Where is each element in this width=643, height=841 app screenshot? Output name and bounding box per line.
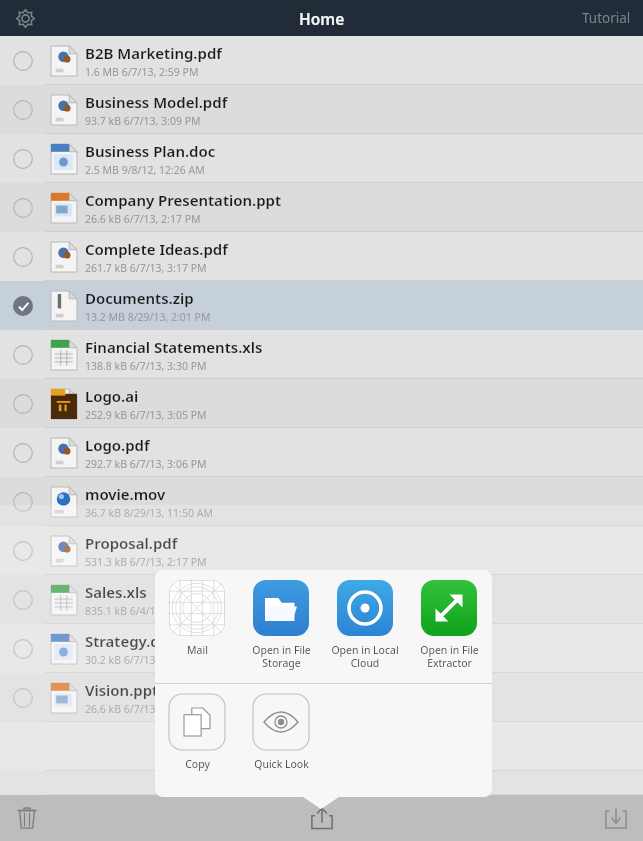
staticText: movie.mov	[85, 484, 166, 504]
button[interactable]: Strategy.doc	[0, 624, 643, 673]
staticText: 36.7 kB 8/29/13, 11:50 AM	[85, 506, 213, 520]
staticText: Tutorial	[582, 9, 631, 27]
button[interactable]: Company Presentation.ppt	[0, 183, 643, 232]
staticText: 835.1 kB 6/4/13, 4:01 PM	[85, 604, 207, 618]
button[interactable]: Tutorial	[576, 3, 637, 33]
staticText: 30.2 kB 6/7/13, 3:30 PM	[85, 653, 201, 667]
staticText: 261.7 kB 6/7/13, 3:17 PM	[85, 261, 207, 275]
staticText: B2B Marketing.pdf	[85, 43, 222, 63]
staticText: Copy	[185, 757, 210, 771]
button[interactable]: Documents.zip	[0, 281, 643, 330]
staticText: Proposal.pdf	[85, 533, 178, 553]
staticText: Documents.zip	[85, 288, 194, 308]
staticText: Mail	[187, 643, 208, 657]
staticText: 93.7 kB 6/7/13, 3:09 PM	[85, 114, 201, 128]
staticText: 292.7 kB 6/7/13, 3:06 PM	[85, 457, 207, 471]
staticText: Home	[299, 8, 345, 29]
staticText: 13.2 MB 8/29/13, 2:01 PM	[85, 310, 211, 324]
staticText: Financial Statements.xls	[85, 337, 263, 357]
staticText: Complete Ideas.pdf	[85, 239, 228, 259]
button[interactable]: Sales.xls	[0, 575, 643, 624]
staticText: 252.9 kB 6/7/13, 3:05 PM	[85, 408, 207, 422]
button[interactable]: Logo.ai	[0, 379, 643, 428]
button[interactable]: Business Model.pdf	[0, 85, 643, 134]
button[interactable]: B2B Marketing.pdf	[0, 36, 643, 85]
button[interactable]: Delete	[8, 799, 46, 837]
button[interactable]: Proposal.pdf	[0, 526, 643, 575]
button[interactable]: Complete Ideas.pdf	[0, 232, 643, 281]
button[interactable]: Quick Look	[239, 684, 323, 797]
staticText: Sales.xls	[85, 582, 147, 602]
button[interactable]: Copy	[155, 684, 239, 797]
staticText: 26.6 kB 6/7/13, 2:17 PM	[85, 212, 201, 226]
button[interactable]: Settings	[8, 1, 42, 35]
staticText: 26.6 kB 6/7/13, 2:56 PM	[85, 702, 201, 716]
staticText: 2.5 MB 9/8/12, 12:26 AM	[85, 163, 205, 177]
button[interactable]: movie.mov	[0, 477, 643, 526]
staticText: Quick Look	[254, 757, 309, 771]
button[interactable]: Logo.pdf	[0, 428, 643, 477]
button[interactable]: Open in File Extractor	[407, 570, 491, 683]
staticText: Business Model.pdf	[85, 92, 228, 112]
staticText: Vision.ppt	[85, 680, 159, 700]
button[interactable]: Vision.ppt	[0, 673, 643, 722]
button[interactable]: Share	[302, 798, 342, 838]
staticText: Logo.pdf	[85, 435, 150, 455]
staticText: Logo.ai	[85, 386, 139, 406]
button[interactable]: Open in File Storage	[239, 570, 323, 683]
button[interactable]: Open in Local Cloud	[323, 570, 407, 683]
staticText: Open in File Storage	[252, 643, 311, 670]
button[interactable]: Mail	[155, 570, 239, 683]
staticText: Open in Local Cloud	[331, 643, 399, 670]
staticText: 138.8 kB 6/7/13, 3:30 PM	[85, 359, 207, 373]
staticText: 531.3 kB 6/7/13, 2:17 PM	[85, 555, 207, 569]
staticText: Business Plan.doc	[85, 141, 216, 161]
staticText: 1.6 MB 6/7/13, 2:59 PM	[85, 65, 199, 79]
button[interactable]: Business Plan.doc	[0, 134, 643, 183]
button[interactable]: Download	[597, 799, 635, 837]
button[interactable]: Financial Statements.xls	[0, 330, 643, 379]
staticText: Company Presentation.ppt	[85, 190, 282, 210]
staticText: Strategy.doc	[85, 631, 177, 651]
staticText: Open in File Extractor	[420, 643, 479, 670]
